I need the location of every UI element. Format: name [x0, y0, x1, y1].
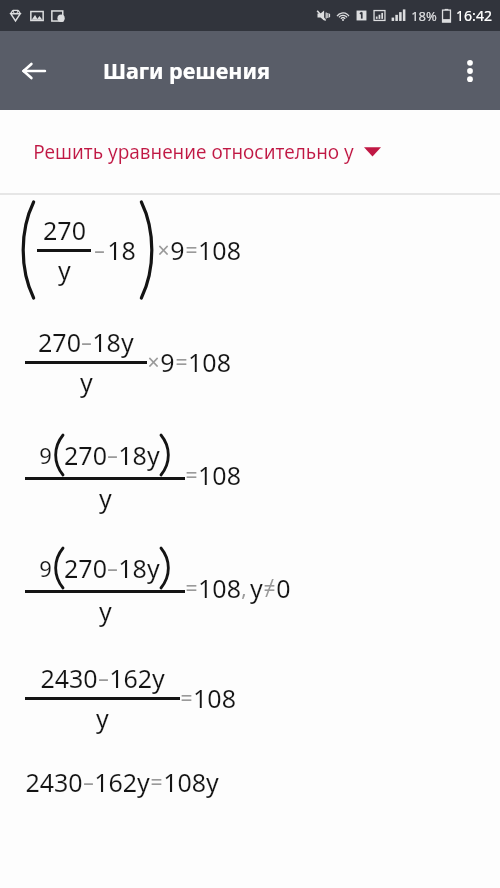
staticText: 9: [160, 345, 175, 379]
staticText: =: [185, 461, 198, 490]
staticText: –: [107, 554, 118, 583]
staticText: –: [98, 664, 109, 693]
staticText: 18y: [118, 551, 160, 585]
staticText: 108y: [163, 765, 219, 799]
staticText: –: [83, 768, 94, 797]
staticText: y: [99, 594, 112, 628]
staticText: 108: [198, 233, 241, 267]
staticText: 16:42: [456, 6, 492, 25]
staticText: =: [175, 348, 188, 377]
button[interactable]: Back: [10, 47, 58, 95]
staticText: 18%: [411, 7, 437, 25]
staticText: y: [80, 365, 93, 399]
staticText: 0: [276, 571, 291, 605]
staticText: 108: [198, 458, 241, 492]
staticText: y: [99, 481, 112, 515]
button[interactable]: More options: [448, 49, 492, 93]
staticText: 162y: [109, 661, 165, 695]
staticText: ,: [241, 575, 247, 602]
staticText: 108: [188, 345, 231, 379]
staticText: 9: [170, 233, 185, 267]
staticText: 18y: [92, 325, 134, 359]
staticText: y: [58, 253, 71, 287]
button[interactable]: 9: [0, 435, 500, 515]
staticText: =: [185, 236, 198, 265]
staticText: ×: [157, 236, 170, 265]
staticText: 108: [198, 571, 241, 605]
staticText: Шаги решения: [103, 56, 270, 85]
staticText: 270: [64, 438, 107, 472]
staticText: 18y: [118, 438, 160, 472]
staticText: ≠: [263, 574, 276, 603]
button[interactable]: 9: [0, 548, 500, 628]
staticText: 108: [193, 681, 236, 715]
staticText: 270: [43, 213, 86, 247]
button[interactable]: Решить уравнение относительно y: [0, 110, 500, 193]
staticText: Решить уравнение относительно y: [33, 139, 354, 165]
button[interactable]: 270: [0, 325, 500, 399]
staticText: –: [107, 441, 118, 470]
staticText: 2430: [25, 765, 83, 799]
staticText: y: [250, 571, 263, 605]
button[interactable]: 2430: [0, 765, 500, 799]
staticText: ×: [147, 348, 160, 377]
staticText: 9: [39, 440, 52, 470]
staticText: y: [96, 701, 109, 735]
staticText: =: [185, 574, 198, 603]
staticText: 18: [107, 233, 136, 267]
staticText: –: [81, 328, 92, 357]
staticText: –: [94, 236, 105, 265]
staticText: =: [180, 684, 193, 713]
staticText: =: [150, 768, 163, 797]
button[interactable]: 270: [0, 202, 500, 298]
staticText: 2430: [40, 661, 98, 695]
staticText: 9: [39, 553, 52, 583]
staticText: 162y: [94, 765, 150, 799]
staticText: 270: [64, 551, 107, 585]
staticText: 270: [38, 325, 81, 359]
button[interactable]: 2430: [0, 661, 500, 735]
